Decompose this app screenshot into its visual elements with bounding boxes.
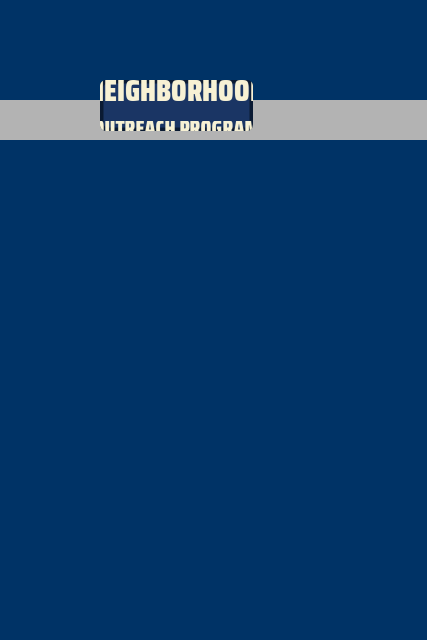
staticText: OUTREACH PROGRAM <box>93 111 259 145</box>
staticText: NEIGHBORHOOD <box>88 66 265 114</box>
